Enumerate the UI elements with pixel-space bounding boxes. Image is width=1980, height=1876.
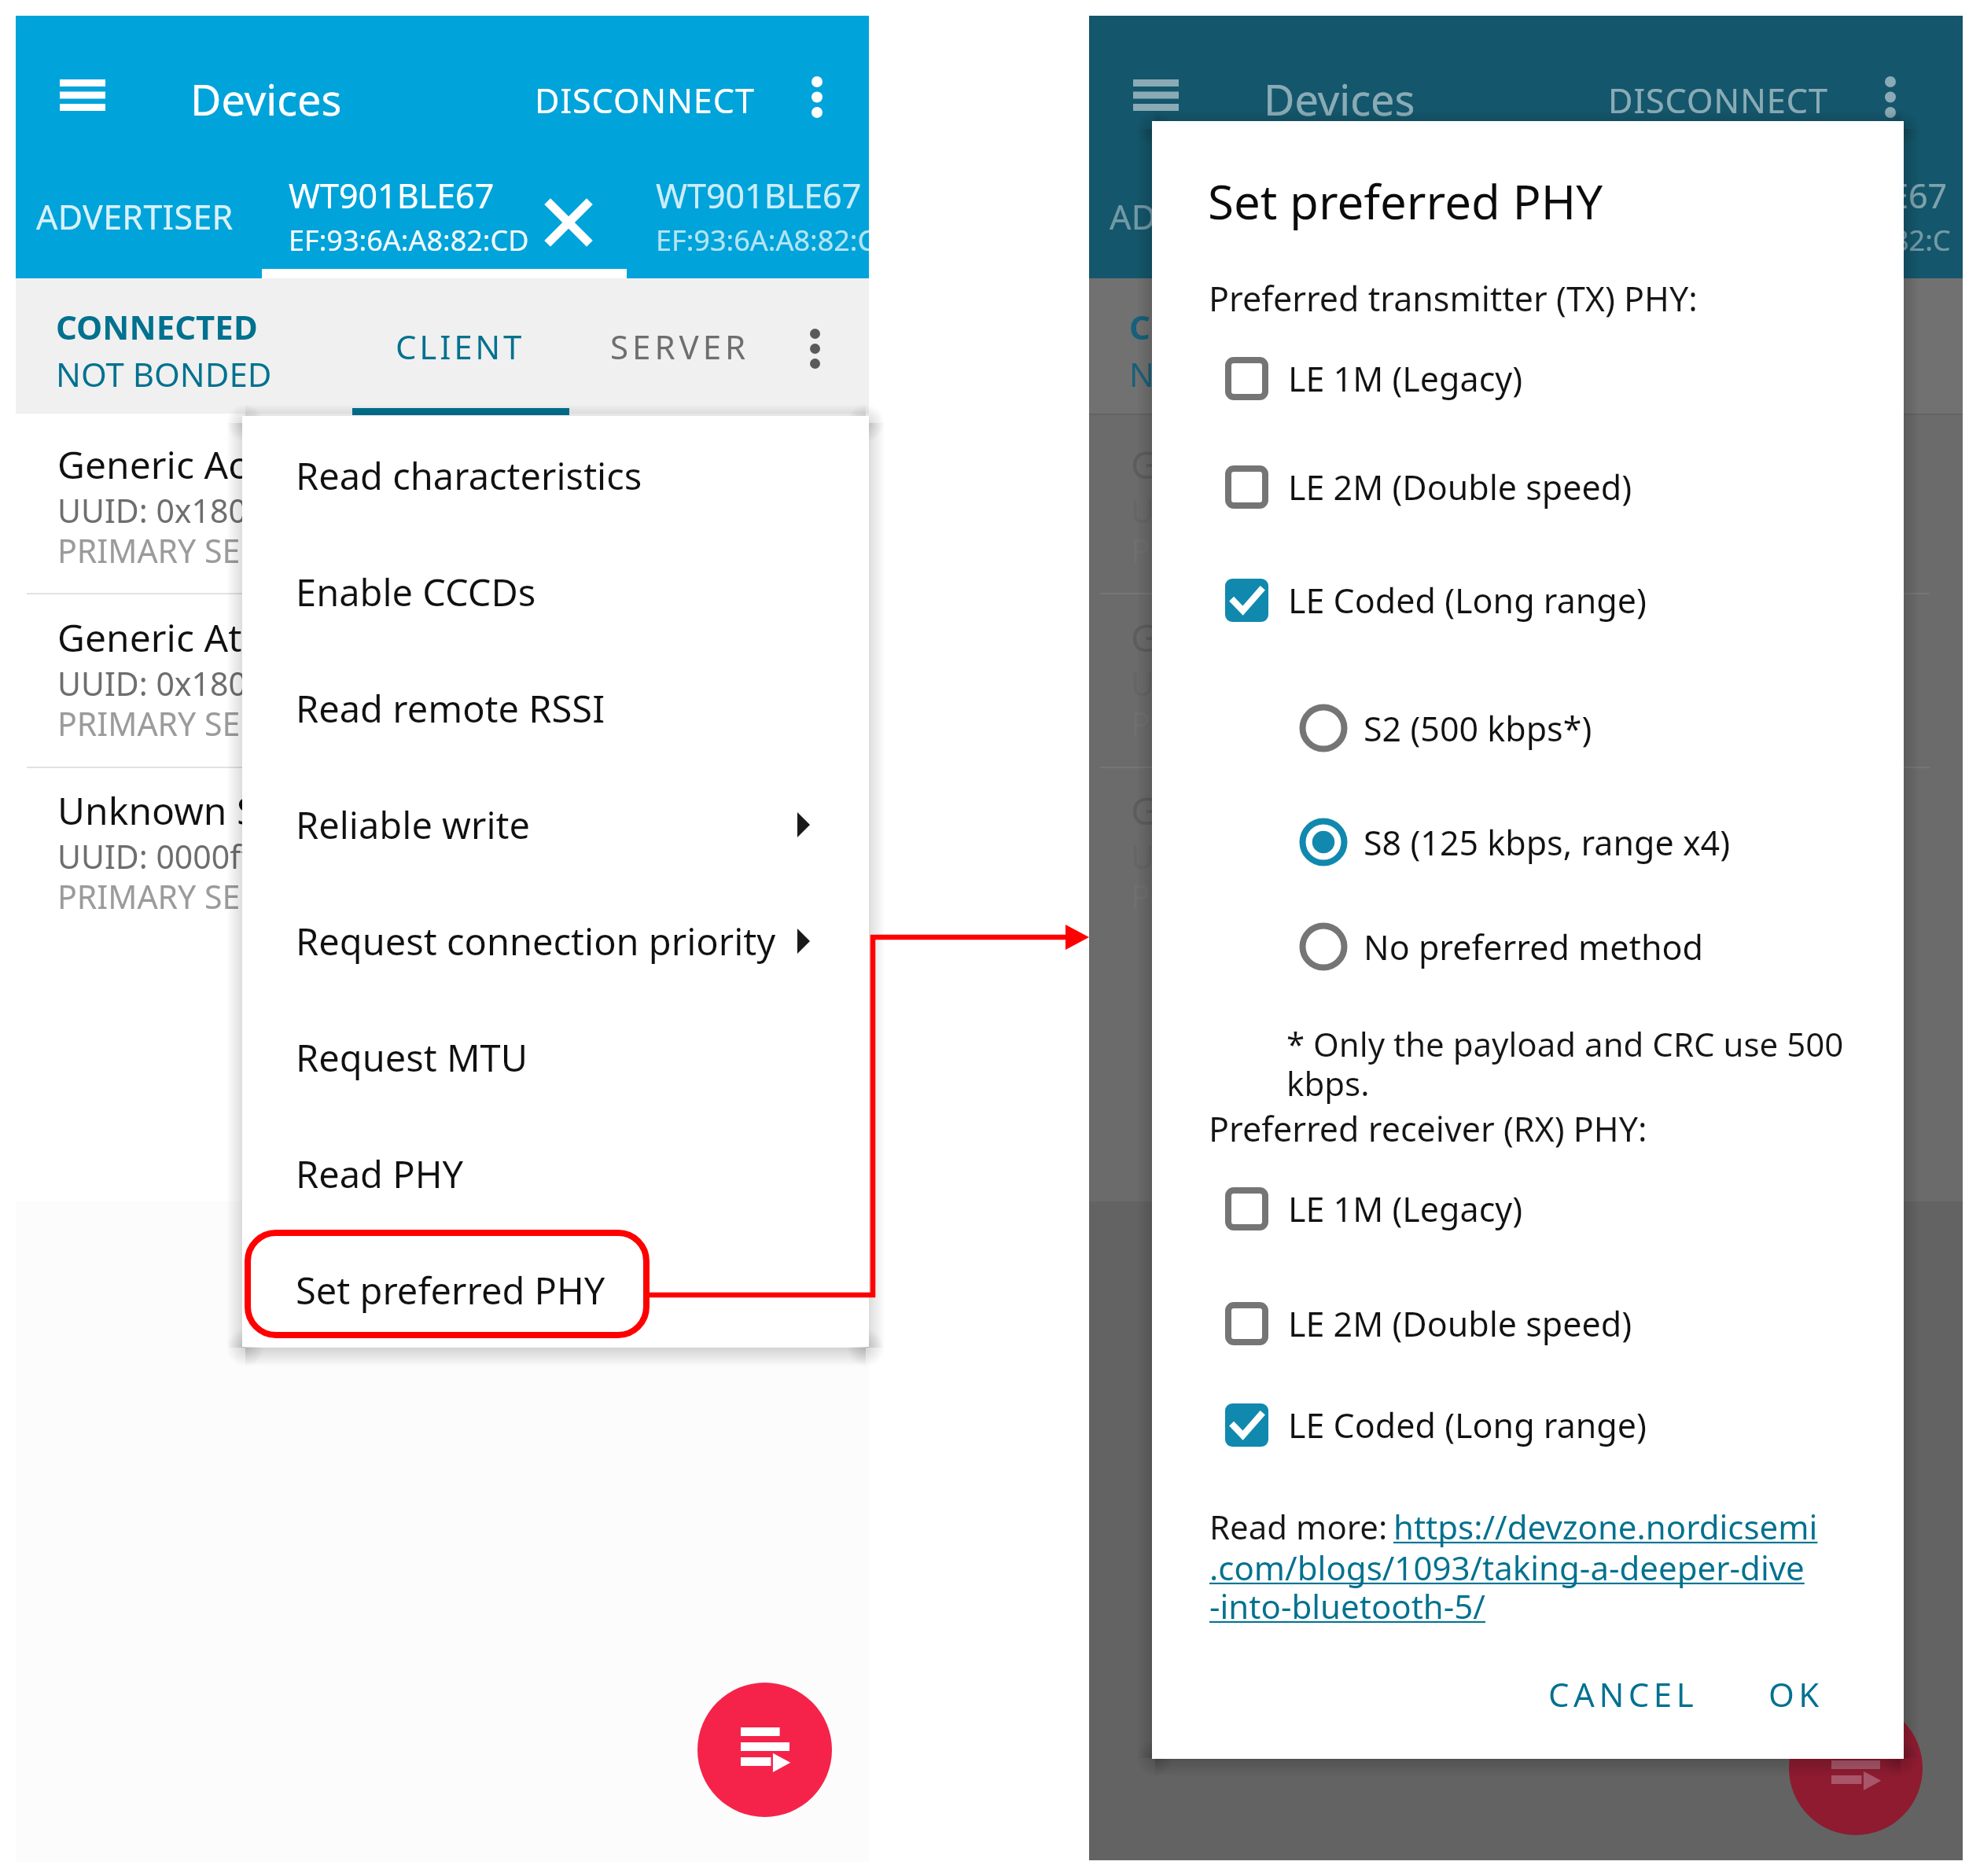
button[interactable] [16, 768, 869, 940]
staticText: Preferred transmitter (TX) PHY: [1209, 275, 1698, 322]
button[interactable]: Send command [697, 1683, 832, 1817]
staticText: LE 1M (Legacy) [1288, 1186, 1523, 1232]
staticText: SERVER [610, 324, 750, 369]
staticText: EF:93:6A:A8:82:C [656, 221, 876, 259]
staticText: LE 2M (Double speed) [1288, 1300, 1632, 1347]
button[interactable]: CLIENT [350, 278, 570, 414]
button[interactable]: LE Coded (Long range) [1152, 1367, 1904, 1483]
button[interactable]: Read remote RSSI [242, 650, 869, 767]
button[interactable]: CANCEL [1527, 1650, 1720, 1737]
staticText: U [1131, 488, 1154, 532]
button[interactable]: Tab options [779, 313, 850, 384]
button[interactable]: Read more: [1209, 1503, 1901, 1648]
staticText: Request connection priority [296, 916, 776, 966]
staticText: DISCONNECT [1608, 77, 1828, 123]
staticText: U [1131, 661, 1154, 705]
staticText: -into-bluetooth-5/ [1209, 1584, 1485, 1628]
staticText: C [1129, 304, 1150, 349]
staticText: Devices [1264, 70, 1415, 128]
staticText: UUID: 0x1801 [57, 661, 266, 705]
button[interactable]: Reliable write [242, 767, 869, 883]
staticText: Set preferred PHY [296, 1265, 605, 1315]
staticText: Generic Attribute [57, 612, 363, 663]
button[interactable]: S2 (500 kbps*) [1152, 670, 1904, 786]
staticText: OK [1768, 1672, 1824, 1716]
staticText: ADVERTISER [36, 193, 234, 240]
staticText: Preferred receiver (RX) PHY: [1209, 1105, 1647, 1152]
button[interactable]: SERVER [570, 278, 790, 414]
staticText: Read remote RSSI [296, 683, 605, 734]
button[interactable]: OK [1739, 1650, 1853, 1737]
staticText: UUID: 0x1800 [57, 488, 266, 532]
staticText: CANCEL [1548, 1672, 1698, 1716]
staticText: Set preferred PHY [1208, 169, 1603, 234]
staticText: PRIMARY SE [57, 701, 241, 745]
button[interactable] [16, 421, 869, 593]
staticText: G [1131, 612, 1158, 663]
button[interactable] [633, 154, 869, 278]
staticText: N [1129, 351, 1154, 396]
staticText: S2 (500 kbps*) [1364, 705, 1592, 752]
staticText: P [1131, 701, 1150, 745]
staticText: PRIMARY SE [57, 874, 241, 918]
staticText: * Only the payload and CRC use 500 [1286, 1021, 1844, 1066]
staticText: E67 [1890, 172, 1948, 219]
staticText: CONNECTED [56, 304, 258, 349]
button[interactable]: LE Coded (Long range) [1152, 542, 1904, 658]
staticText: LE 1M (Legacy) [1288, 355, 1523, 402]
button[interactable]: Read characteristics [242, 418, 869, 534]
staticText: Read PHY [296, 1149, 464, 1199]
staticText: Unknown Service [57, 785, 363, 836]
staticText: WT901BLE67 [289, 172, 495, 219]
button[interactable]: Request MTU [242, 999, 869, 1116]
staticText: ADVERTISER [1110, 193, 1307, 240]
button[interactable]: Open navigation drawer [37, 50, 128, 141]
staticText: NOT BONDED [56, 351, 272, 396]
staticText: WT901BLE67 [656, 172, 862, 219]
staticText: PRIMARY SE [57, 528, 241, 572]
staticText: G [1131, 439, 1158, 490]
staticText: .com/blogs/1093/taking-a-deeper-dive [1209, 1545, 1805, 1590]
button[interactable]: LE 2M (Double speed) [1152, 1265, 1904, 1381]
staticText: U [1131, 834, 1154, 878]
button[interactable]: Enable CCCDs [242, 534, 869, 650]
staticText: LE Coded (Long range) [1288, 577, 1647, 623]
staticText: Request MTU [296, 1032, 528, 1083]
button[interactable]: LE 1M (Legacy) [1152, 1150, 1904, 1267]
staticText: Read more: [1209, 1504, 1397, 1549]
staticText: EF:93:6A:A8:82:CD [289, 221, 529, 259]
button[interactable] [16, 594, 869, 767]
staticText: kbps. [1286, 1061, 1370, 1105]
staticText: Devices [190, 70, 342, 128]
staticText: Reliable write [296, 800, 531, 850]
staticText: LE Coded (Long range) [1288, 1402, 1647, 1448]
button[interactable]: LE 2M (Double speed) [1152, 429, 1904, 545]
button[interactable]: Close connection [535, 189, 602, 256]
staticText: No preferred method [1364, 924, 1704, 970]
button[interactable] [16, 154, 204, 278]
staticText: UUID: 0000ffe5- [57, 834, 300, 878]
staticText: Read characteristics [296, 451, 642, 501]
button[interactable] [204, 154, 428, 278]
staticText: LE 2M (Double speed) [1288, 464, 1632, 510]
button[interactable]: Set preferred PHY [242, 1232, 869, 1348]
staticText: P [1131, 528, 1150, 572]
staticText: P [1131, 874, 1150, 918]
staticText: https://devzone.nordicsemi [1393, 1504, 1818, 1549]
button[interactable]: Request connection priority [242, 883, 869, 999]
button[interactable]: DISCONNECT [535, 57, 755, 143]
button[interactable]: S8 (125 kbps, range x4) [1152, 784, 1904, 900]
staticText: CLIENT [396, 324, 525, 369]
staticText: Generic Access [57, 439, 322, 490]
staticText: G [1131, 785, 1158, 836]
staticText: DISCONNECT [535, 77, 755, 123]
button[interactable]: No preferred method [1152, 888, 1904, 1005]
button[interactable]: Read PHY [242, 1116, 869, 1232]
button[interactable]: More options [775, 54, 859, 139]
staticText: Enable CCCDs [296, 567, 536, 617]
staticText: 82:C [1893, 221, 1951, 259]
button[interactable]: LE 1M (Legacy) [1152, 320, 1904, 436]
staticText: S8 (125 kbps, range x4) [1364, 819, 1731, 866]
